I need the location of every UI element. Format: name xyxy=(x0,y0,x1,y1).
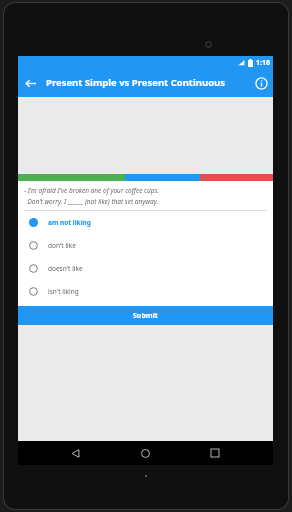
staticText: - I'm afraid I've broken one of your cof… xyxy=(24,186,160,195)
button[interactable]: Recent apps xyxy=(203,441,227,465)
staticText: 1:16 xyxy=(256,58,270,68)
staticText: don't like xyxy=(48,241,76,250)
staticText: am not liking xyxy=(48,218,91,227)
staticText: doesn't like xyxy=(48,264,83,273)
staticText: Present Simple vs Present Continuous xyxy=(46,76,226,89)
button[interactable]: Back xyxy=(63,441,87,465)
button[interactable]: isn't liking xyxy=(18,280,273,303)
button[interactable]: don't like xyxy=(18,234,273,257)
staticText: Submit xyxy=(133,311,158,321)
button[interactable]: doesn't like xyxy=(18,257,273,280)
staticText: Don't worry. I ______ (not like) that se… xyxy=(24,197,159,206)
button[interactable]: Submit xyxy=(18,306,273,325)
button[interactable]: Information xyxy=(249,71,273,95)
button[interactable]: Home xyxy=(133,441,157,465)
button[interactable]: am not liking xyxy=(18,211,273,234)
button[interactable]: Back xyxy=(18,71,42,95)
staticText: isn't liking xyxy=(48,287,79,296)
